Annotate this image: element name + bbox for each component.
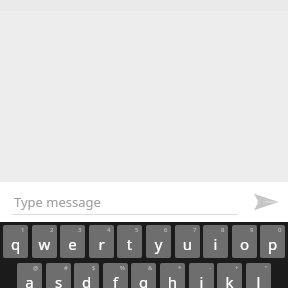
staticText: y [146,234,171,254]
staticText: - [209,264,211,272]
staticText: Type message [14,193,101,211]
button[interactable]: 3 [60,225,85,258]
staticText: * [178,264,182,272]
button[interactable]: 9 [232,225,257,258]
staticText: t [117,234,142,254]
staticText: 0 [278,226,282,234]
button[interactable]: 7 [175,225,200,258]
staticText: $ [92,264,96,272]
button[interactable]: % [103,263,128,288]
staticText: 7 [193,226,197,234]
button[interactable]: Type message [0,182,244,222]
staticText: 6 [164,226,168,234]
staticText: 4 [107,226,111,234]
button[interactable]: @ [17,263,42,288]
staticText: & [148,264,153,272]
button[interactable]: " [246,263,271,288]
staticText: d [74,272,99,288]
staticText: a [17,272,42,288]
staticText: s [46,272,71,288]
staticText: # [64,264,68,272]
staticText: 1 [21,226,25,234]
button[interactable]: 1 [3,225,28,258]
staticText: q [3,234,28,254]
button[interactable]: + [217,263,242,288]
staticText: w [32,234,57,254]
button[interactable]: $ [74,263,99,288]
staticText: h [160,272,185,288]
staticText: i [203,234,228,254]
staticText: f [103,272,128,288]
button[interactable]: 5 [117,225,142,258]
staticText: u [175,234,200,254]
staticText: % [120,264,125,272]
button[interactable]: 4 [89,225,114,258]
staticText: l [246,272,271,288]
button[interactable]: Send [244,182,288,222]
button[interactable]: 6 [146,225,171,258]
staticText: r [89,234,114,254]
staticText: p [260,234,285,254]
staticText: j [189,272,214,288]
staticText: e [60,234,85,254]
button[interactable]: * [160,263,185,288]
button[interactable]: & [131,263,156,288]
staticText: @ [33,264,39,272]
staticText: 2 [50,226,54,234]
button[interactable]: # [46,263,71,288]
staticText: 8 [221,226,225,234]
staticText: 3 [78,226,82,234]
button[interactable]: 8 [203,225,228,258]
staticText: k [217,272,242,288]
button[interactable]: - [189,263,214,288]
staticText: 5 [135,226,139,234]
staticText: " [265,264,268,272]
button[interactable]: 0 [260,225,285,258]
button[interactable]: 2 [32,225,57,258]
staticText: o [232,234,257,254]
staticText: g [131,272,156,288]
staticText: 9 [250,226,254,234]
staticText: + [235,264,239,272]
